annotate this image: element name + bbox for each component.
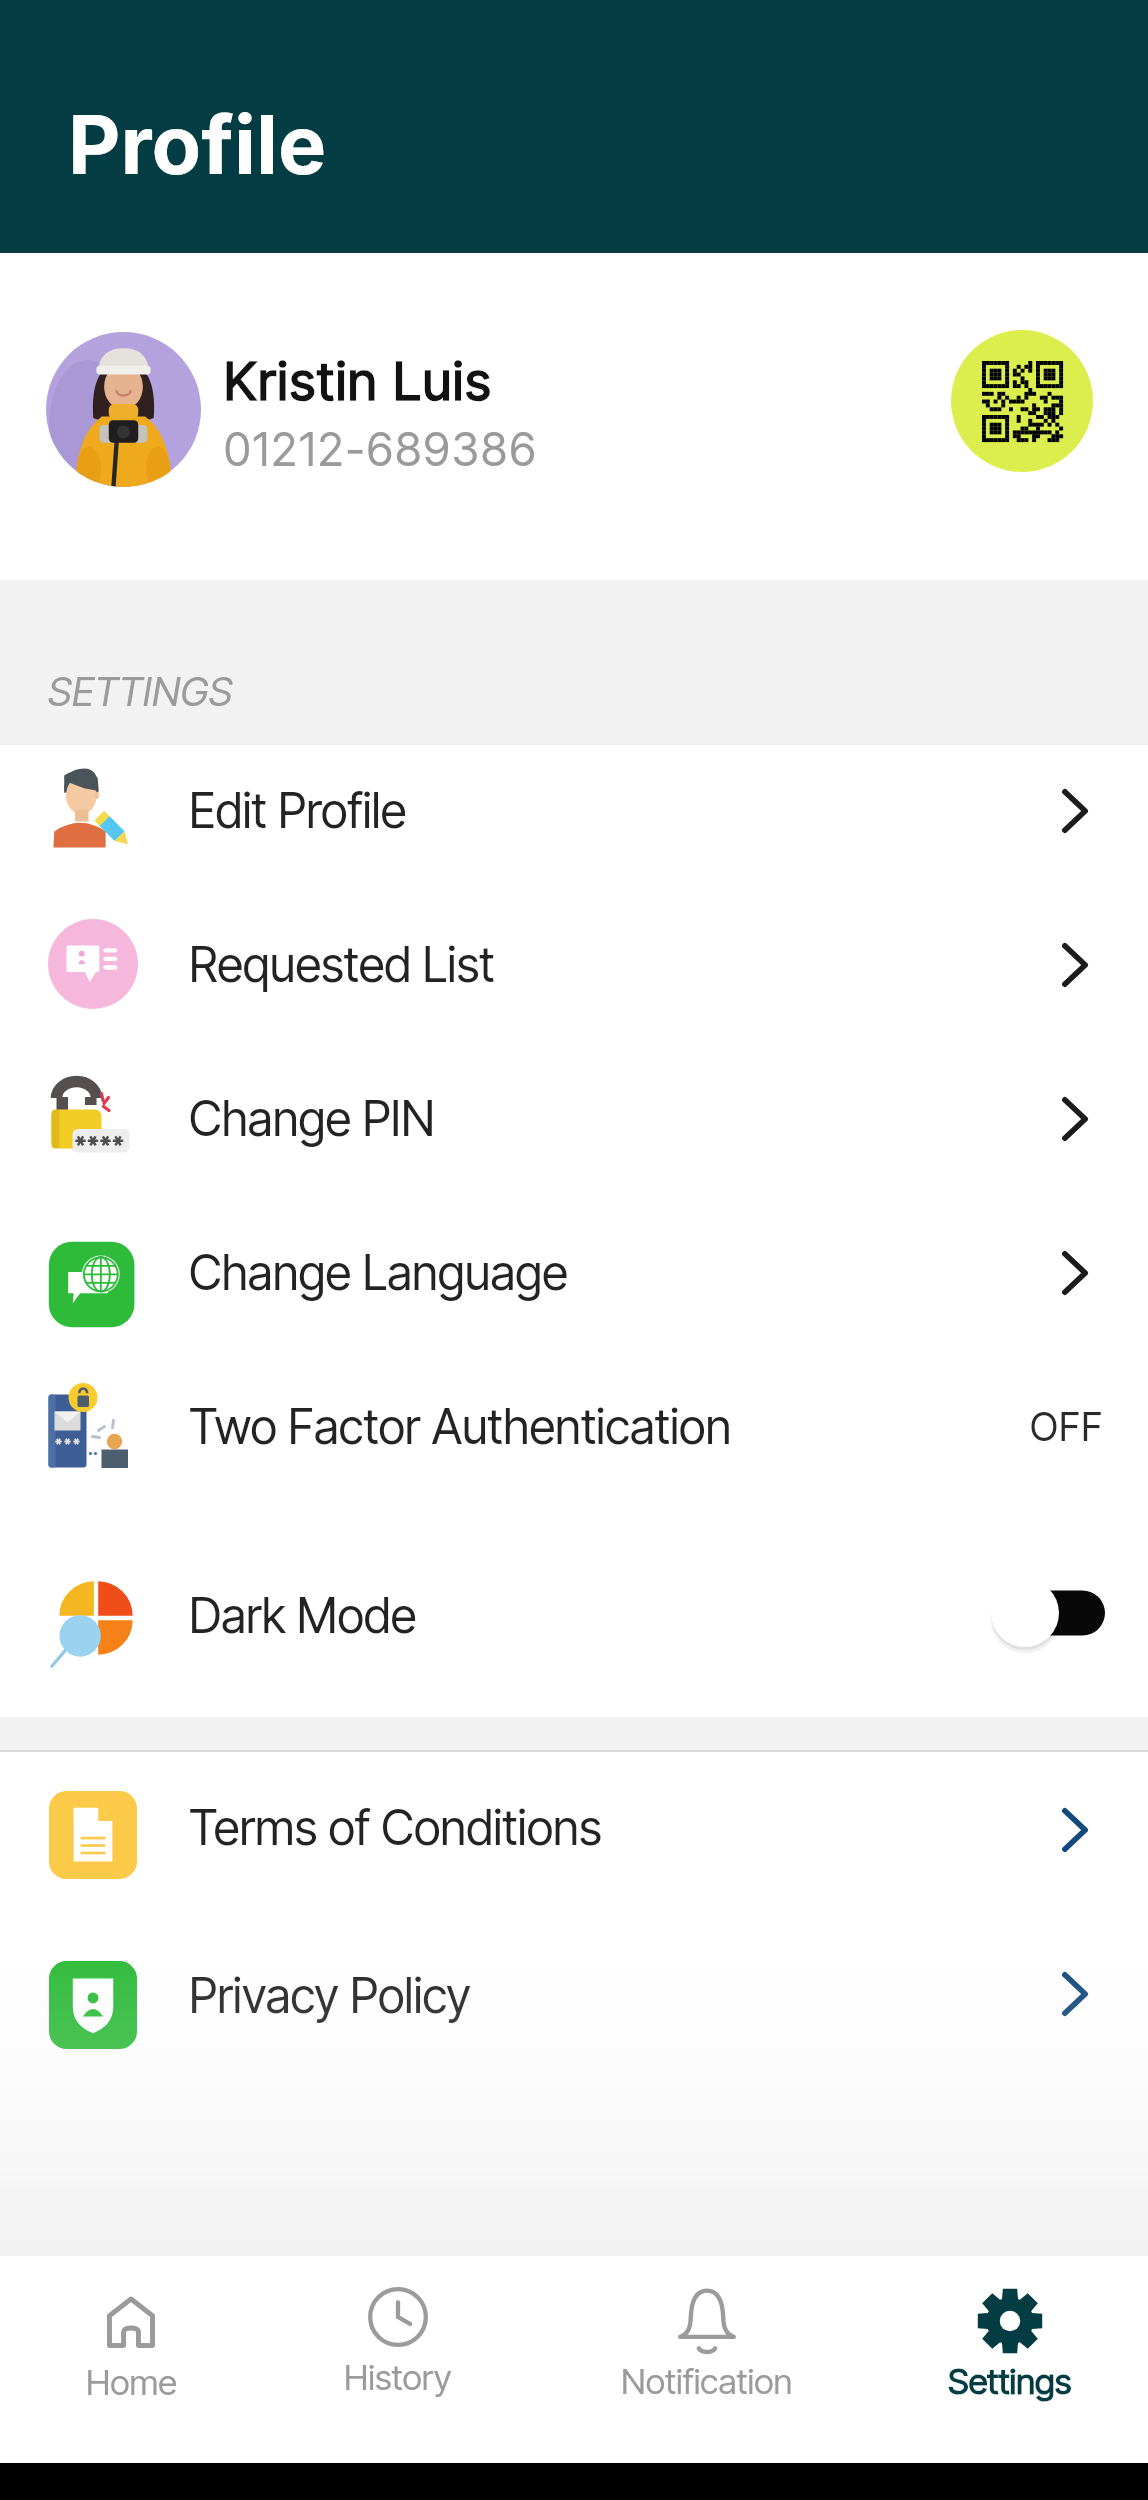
staticText: Change Language xyxy=(189,1243,568,1301)
button[interactable]: Show my QR code xyxy=(951,330,1093,472)
staticText: 01212-689386 xyxy=(224,421,538,477)
button[interactable]: Two Factor Authentication xyxy=(0,1361,1148,1515)
button[interactable]: History xyxy=(288,2284,508,2398)
button[interactable]: Privacy Policy xyxy=(0,1901,1148,2084)
staticText: Terms of Conditions xyxy=(189,1798,602,1856)
button[interactable]: Dark mode toggle xyxy=(991,1579,1105,1647)
staticText: Privacy Policy xyxy=(189,1966,471,2024)
staticText: Dark Mode xyxy=(189,1586,417,1644)
staticText: Kristin Luis xyxy=(224,349,493,413)
staticText: SETTINGS xyxy=(48,667,233,715)
staticText: History xyxy=(344,2356,452,2398)
button[interactable]: Change PIN xyxy=(0,1053,1148,1207)
button[interactable]: Notification xyxy=(597,2288,817,2402)
staticText: Edit Profile xyxy=(189,781,407,839)
button[interactable]: Edit Profile xyxy=(0,745,1148,899)
staticText: Notification xyxy=(621,2360,793,2402)
staticText: Two Factor Authentication xyxy=(189,1397,732,1455)
button[interactable]: Change Language xyxy=(0,1207,1148,1361)
button[interactable]: Settings xyxy=(900,2288,1120,2402)
staticText: Requested List xyxy=(189,935,495,993)
button[interactable]: Requested List xyxy=(0,899,1148,1053)
staticText: Home xyxy=(86,2361,177,2403)
staticText: Change PIN xyxy=(189,1089,435,1147)
staticText: Settings xyxy=(948,2360,1072,2402)
button[interactable]: Terms of Conditions xyxy=(0,1752,1148,1901)
button[interactable]: Home xyxy=(21,2289,241,2403)
button[interactable]: Dark Mode xyxy=(0,1515,1148,1717)
staticText: Profile xyxy=(68,96,327,194)
staticText: OFF xyxy=(1030,1403,1104,1450)
